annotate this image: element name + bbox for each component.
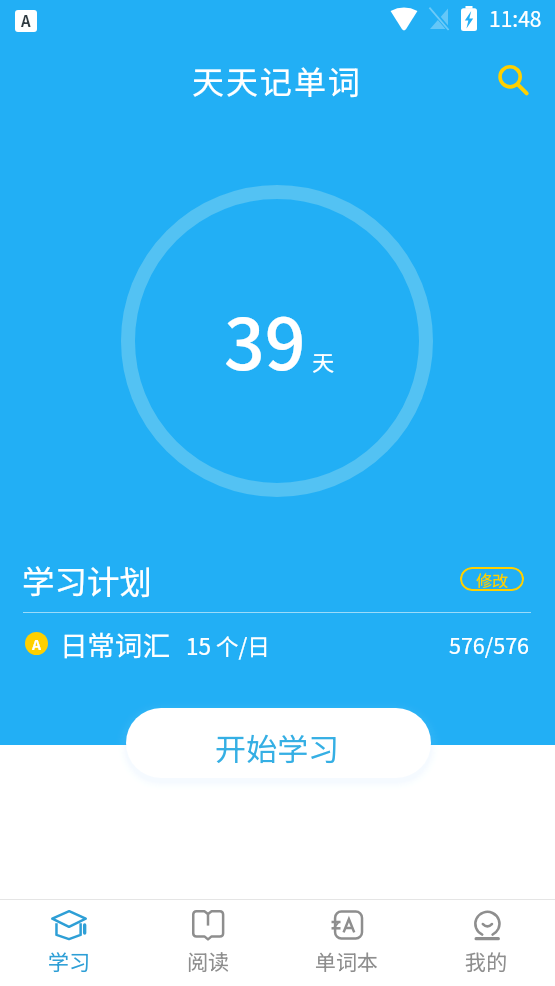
staticText: 天	[312, 345, 335, 377]
button[interactable]: 单词本	[277, 900, 416, 986]
staticText: 开始学习	[215, 725, 339, 770]
staticText: A	[21, 10, 31, 32]
staticText: 修改	[476, 568, 509, 591]
staticText: 学习计划	[22, 556, 153, 603]
staticText: 日常词汇	[60, 624, 170, 664]
button[interactable]: 我的	[416, 900, 555, 986]
button[interactable]: A	[0, 624, 555, 664]
button[interactable]: 阅读	[138, 900, 277, 986]
staticText: 576/576	[449, 629, 530, 660]
button[interactable]: Search	[491, 58, 535, 102]
button[interactable]: 开始学习	[126, 708, 431, 778]
staticText: 15 个/日	[186, 629, 270, 662]
staticText: 天天记单词	[192, 57, 363, 103]
staticText: 阅读	[187, 946, 229, 976]
button[interactable]: 学习	[0, 900, 138, 986]
button[interactable]: 修改	[460, 567, 524, 591]
staticText: 11:48	[489, 3, 542, 33]
staticText: 单词本	[315, 946, 378, 976]
staticText: A	[32, 634, 41, 654]
staticText: 学习	[48, 946, 90, 976]
staticText: 39	[224, 287, 306, 391]
staticText: 我的	[465, 946, 507, 976]
